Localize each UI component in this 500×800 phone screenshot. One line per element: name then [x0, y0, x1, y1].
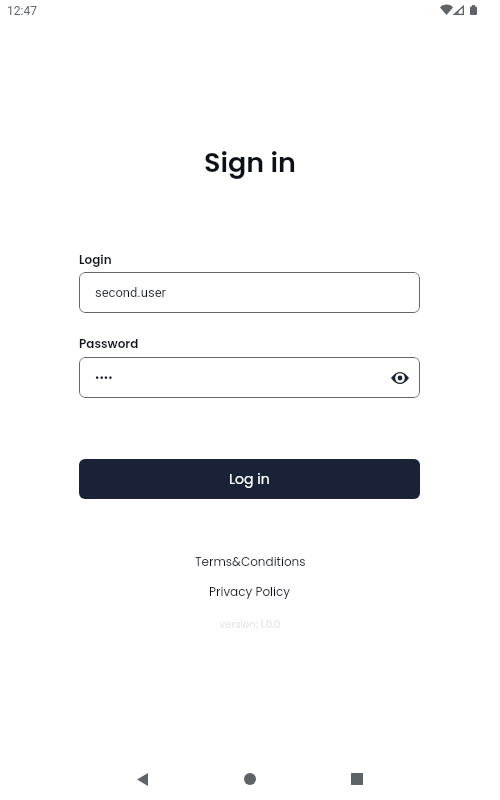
staticText: 12:47 — [7, 4, 37, 18]
staticText: Sign in — [0, 144, 500, 182]
button[interactable]: Recents — [333, 755, 381, 800]
button[interactable]: second.user — [79, 272, 420, 313]
button[interactable]: Show password — [386, 364, 414, 392]
button[interactable]: Privacy Policy — [199, 578, 301, 605]
button[interactable]: Log in — [79, 459, 420, 499]
button[interactable]: Back — [118, 755, 166, 800]
button[interactable]: Terms&Conditions — [185, 548, 316, 575]
button[interactable]: Home — [226, 755, 274, 800]
staticText: Privacy Policy — [209, 583, 291, 600]
staticText: version: 1.0.0 — [0, 617, 500, 631]
staticText: Login — [79, 251, 112, 268]
staticText: Log in — [229, 469, 270, 489]
staticText: Terms&Conditions — [195, 553, 306, 570]
staticText: •••• — [95, 370, 113, 385]
staticText: second.user — [95, 285, 166, 300]
staticText: Password — [79, 335, 139, 352]
button[interactable]: •••• — [79, 357, 420, 398]
